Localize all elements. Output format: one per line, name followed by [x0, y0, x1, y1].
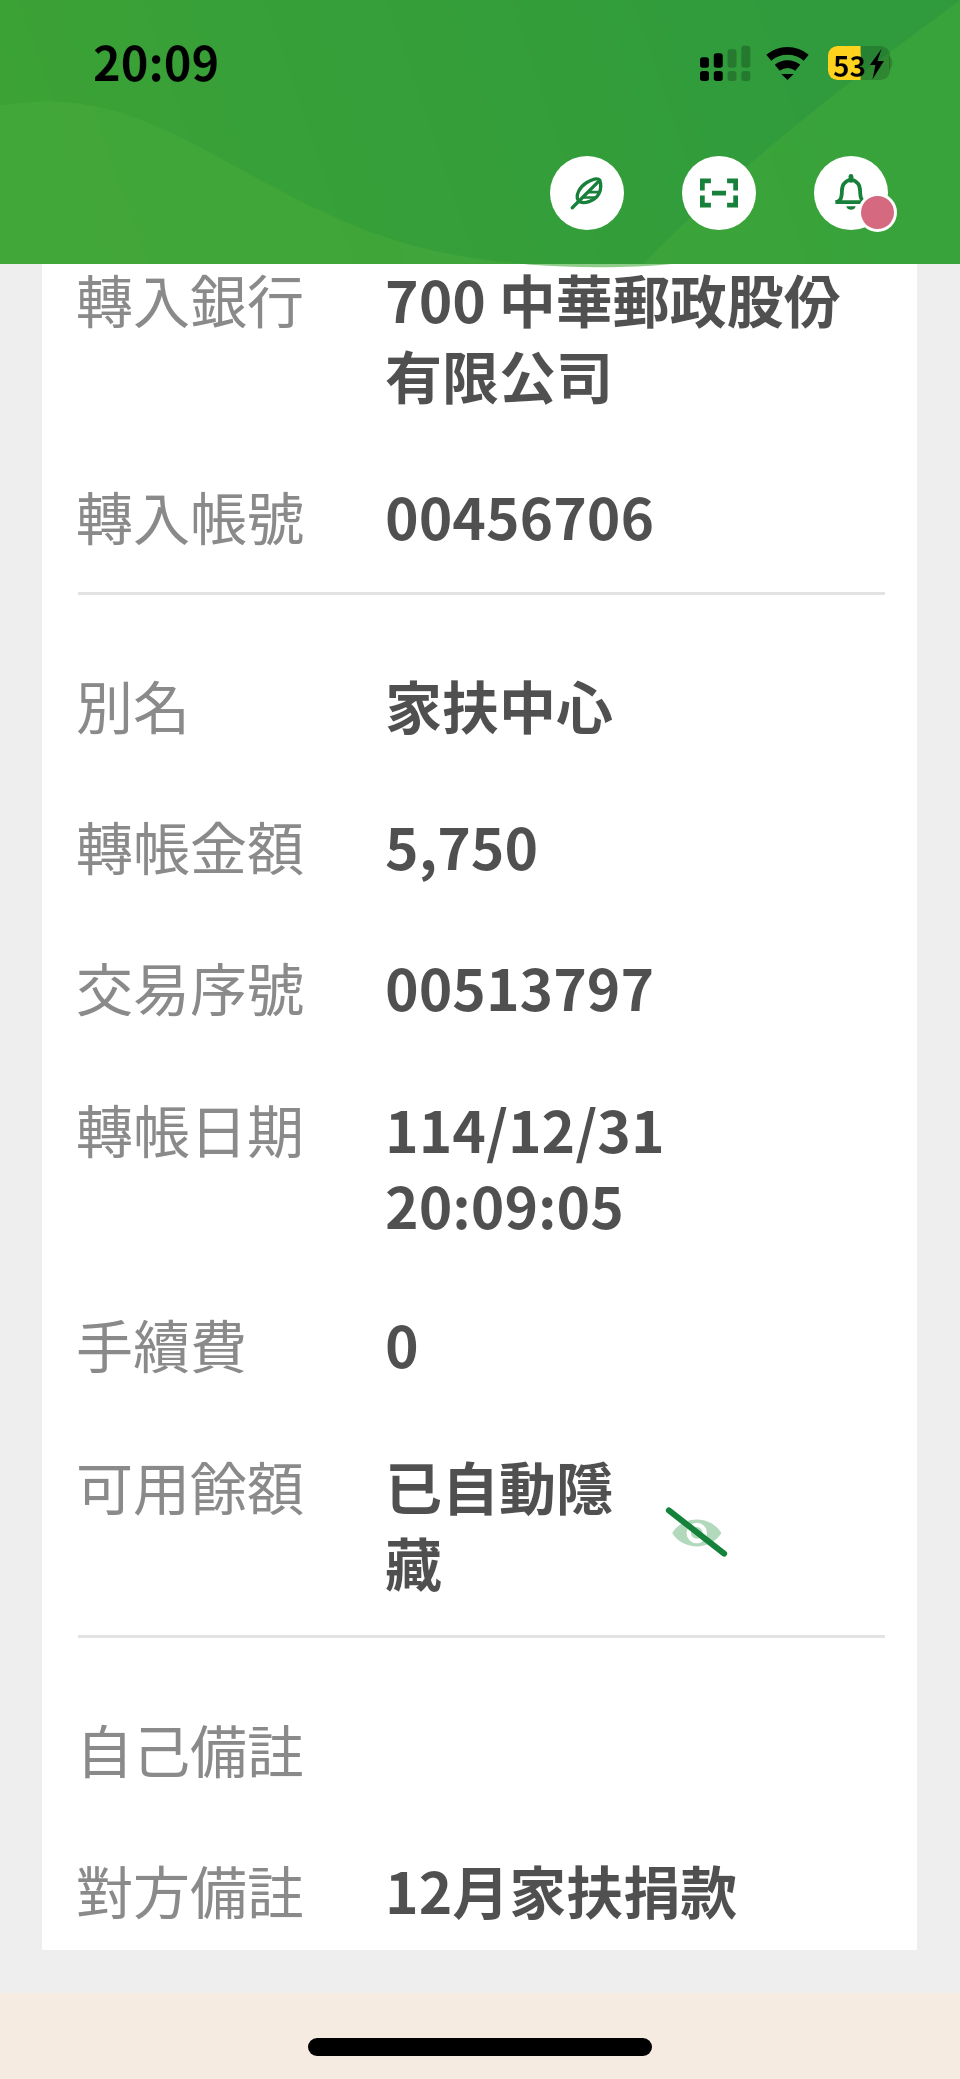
- staticText: 5,750: [385, 804, 865, 887]
- staticText: 轉帳日期: [76, 1087, 385, 1170]
- button[interactable]: 別名: [76, 663, 951, 746]
- staticText: 00456706: [385, 474, 865, 557]
- button[interactable]: Notifications: [814, 156, 888, 230]
- staticText: 家扶中心: [385, 663, 865, 746]
- staticText: 0: [385, 1302, 865, 1385]
- button[interactable]: Scan QR code: [682, 156, 756, 230]
- staticText: 12月家扶捐款: [385, 1848, 865, 1931]
- button[interactable]: 轉帳金額: [76, 804, 951, 887]
- button[interactable]: Show available balance: [655, 1496, 737, 1568]
- button[interactable]: 交易序號: [76, 945, 951, 1028]
- staticText: 轉入帳號: [76, 474, 385, 557]
- button[interactable]: 手續費: [76, 1302, 951, 1385]
- button[interactable]: 轉入帳號: [76, 474, 951, 557]
- staticText: 對方備註: [76, 1848, 385, 1931]
- staticText: 交易序號: [76, 945, 385, 1028]
- button[interactable]: 轉入銀行: [76, 257, 951, 415]
- staticText: 手續費: [76, 1302, 385, 1385]
- staticText: 轉入銀行: [76, 257, 385, 340]
- button[interactable]: 對方備註: [76, 1848, 951, 1931]
- button[interactable]: Compose message: [550, 156, 624, 230]
- staticText: 自己備註: [76, 1707, 385, 1790]
- staticText: 已自動隱藏: [385, 1444, 637, 1602]
- staticText: 轉帳金額: [76, 804, 385, 887]
- staticText: 53: [833, 45, 867, 79]
- staticText: 20:09: [93, 26, 220, 94]
- staticText: 可用餘額: [76, 1444, 385, 1527]
- button[interactable]: 自己備註: [76, 1707, 951, 1790]
- staticText: 別名: [76, 663, 385, 746]
- staticText: 00513797: [385, 945, 865, 1028]
- staticText: 700 中華郵政股份有限公司: [385, 257, 865, 415]
- button[interactable]: 轉帳日期: [76, 1087, 951, 1245]
- staticText: 114/12/31 20:09:05: [385, 1087, 865, 1245]
